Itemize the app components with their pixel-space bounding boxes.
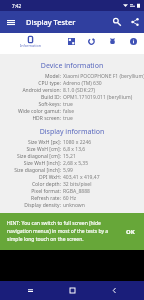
button[interactable]: Information bbox=[8, 33, 52, 54]
staticText: 403,41 x 419,47 bbox=[63, 174, 144, 181]
button[interactable]: Menu bbox=[2, 12, 20, 32]
staticText: Size WxH [cm]: bbox=[26, 146, 61, 153]
staticText: Size diagonal [cm]: bbox=[17, 153, 61, 160]
staticText: Pixel format: bbox=[31, 188, 61, 195]
staticText: 60 Hz bbox=[63, 195, 144, 202]
button[interactable]: OK bbox=[122, 226, 139, 238]
staticText: 15,21 bbox=[63, 153, 144, 160]
staticText: Xiaomi POCOPHONE F1 (beryllium) bbox=[63, 73, 144, 80]
staticText: Soft-keys: bbox=[38, 101, 61, 108]
staticText: Device information bbox=[0, 61, 144, 71]
staticText: Display information bbox=[0, 127, 144, 137]
button[interactable]: Share bbox=[126, 12, 144, 32]
staticText: Wide color gamut: bbox=[17, 108, 61, 115]
button[interactable]: Search bbox=[108, 12, 126, 32]
staticText: HINT: You can switch to full screen (hid… bbox=[7, 220, 113, 243]
staticText: Size WxH [inch]: bbox=[23, 160, 61, 167]
staticText: Adreno (TM) 630 bbox=[63, 80, 144, 87]
staticText: RGBA_8888 bbox=[63, 188, 144, 195]
staticText: true bbox=[63, 101, 144, 108]
staticText: Refresh rate: bbox=[31, 195, 61, 202]
staticText: 1080 x 2246 bbox=[63, 139, 144, 146]
staticText: true bbox=[63, 115, 144, 122]
staticText: Size diagonal [inch]: bbox=[14, 167, 61, 174]
staticText: unknown bbox=[63, 202, 144, 209]
staticText: 8.1.0 (SDK:27) bbox=[63, 87, 144, 94]
staticText: Information bbox=[20, 43, 41, 48]
staticText: OPM1.171019.011 (beryllium) bbox=[63, 94, 144, 101]
staticText: 7:42 bbox=[12, 3, 22, 9]
button[interactable]: Tab bbox=[124, 37, 142, 45]
staticText: DPI WxH: bbox=[38, 174, 61, 181]
staticText: CPU type: bbox=[38, 80, 61, 87]
staticText: HDR screen: bbox=[32, 115, 61, 122]
staticText: Size WxH [px]: bbox=[27, 139, 61, 146]
button[interactable]: Tab bbox=[82, 37, 100, 45]
button[interactable]: Back bbox=[102, 281, 126, 300]
staticText: false bbox=[63, 108, 144, 115]
staticText: Model: bbox=[44, 73, 61, 80]
staticText: Android version: bbox=[22, 87, 61, 94]
button[interactable]: Home bbox=[60, 281, 84, 300]
staticText: 6,8 x 13,6 bbox=[63, 146, 144, 153]
staticText: Display Tester bbox=[26, 17, 76, 27]
staticText: OK bbox=[126, 228, 135, 236]
staticText: Display density: bbox=[24, 202, 61, 209]
staticText: 2,68 x 5,35 bbox=[63, 160, 144, 167]
button[interactable]: Recents bbox=[18, 281, 42, 300]
staticText: Build ID: bbox=[41, 94, 61, 101]
staticText: 5,99 bbox=[63, 167, 144, 174]
staticText: Color depth: bbox=[31, 181, 61, 188]
staticText: 32 bits/pixel bbox=[63, 181, 144, 188]
button[interactable]: Tab bbox=[62, 37, 80, 45]
button[interactable]: Tab bbox=[103, 37, 121, 45]
